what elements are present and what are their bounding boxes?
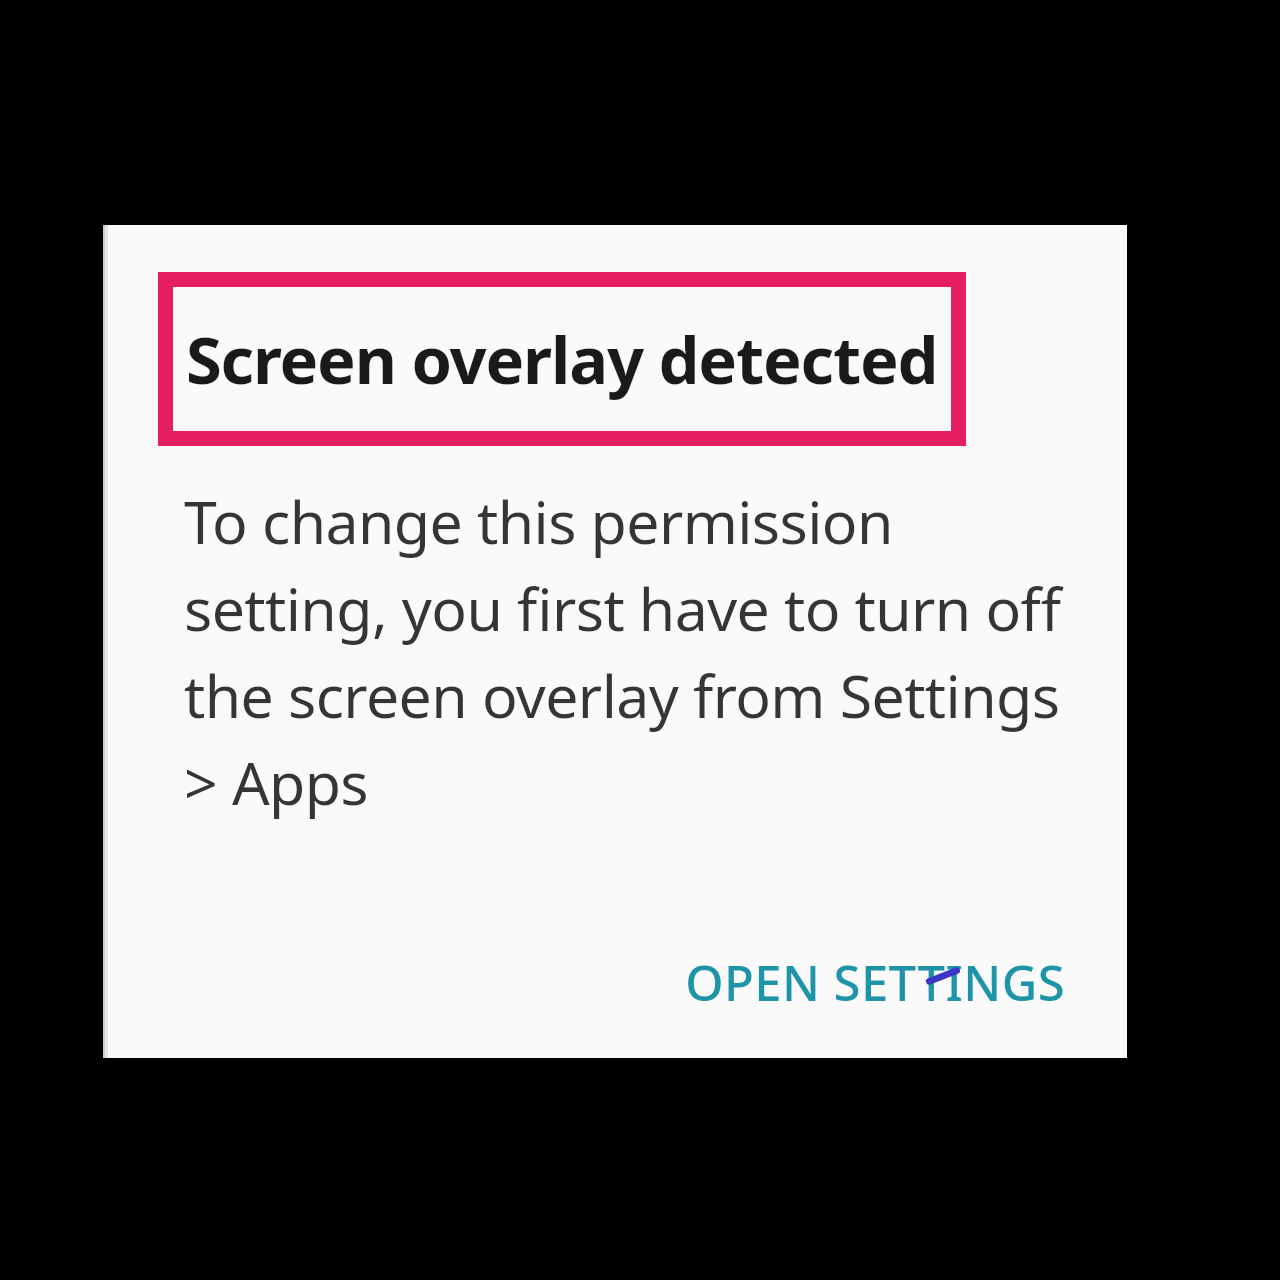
button[interactable]: OPEN SETTINGS [648, 927, 1065, 1037]
staticText: To change this permission setting, you f… [184, 481, 1061, 823]
other: Pointer [928, 967, 958, 985]
staticText: OPEN SETTINGS [685, 949, 1065, 1016]
staticText: Screen overlay detected [186, 315, 938, 404]
